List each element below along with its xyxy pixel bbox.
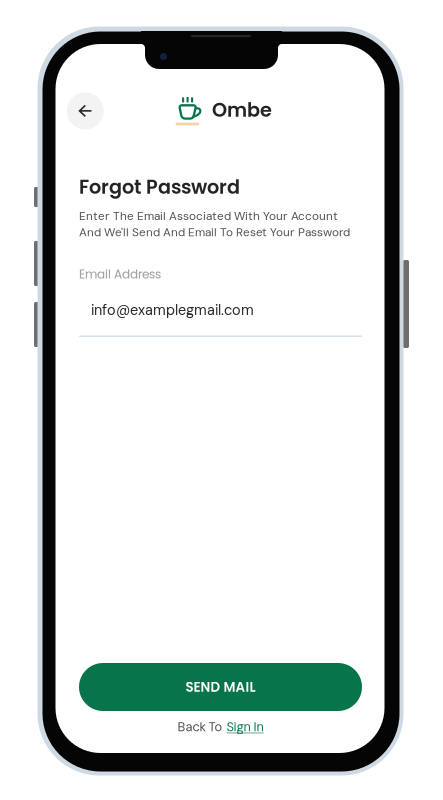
button[interactable]: SEND MAIL: [79, 663, 362, 711]
staticText: And We'll Send And Email To Reset Your P…: [79, 225, 350, 240]
staticText: Forgot Password: [79, 173, 240, 200]
staticText: Enter The Email Associated With Your Acc…: [79, 208, 338, 224]
button[interactable]: Back To: [79, 714, 362, 740]
staticText: SEND MAIL: [185, 678, 255, 696]
staticText: Email Address: [79, 266, 161, 283]
staticText: info@examplegmail.com: [91, 301, 254, 319]
staticText: Back To: [177, 719, 222, 735]
staticText: Ombe: [212, 97, 272, 123]
staticText: Sign In: [226, 719, 263, 735]
button[interactable]: Back: [67, 92, 104, 129]
